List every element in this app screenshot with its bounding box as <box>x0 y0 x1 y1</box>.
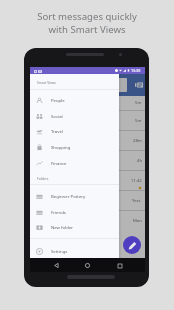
button[interactable]: Shopping <box>30 139 119 155</box>
button[interactable]: Compose message <box>123 236 141 254</box>
staticText: 5m <box>135 118 142 124</box>
staticText: 28m <box>133 138 142 144</box>
staticText: Sort messages quickly <box>37 10 137 23</box>
staticText: Social <box>51 113 63 119</box>
button[interactable]: Beginner Pottery <box>30 188 119 204</box>
staticText: Finance <box>51 160 67 166</box>
staticText: Smart Views <box>37 80 56 84</box>
button[interactable]: People <box>30 92 119 108</box>
button[interactable]: Back <box>51 260 62 271</box>
staticText: Folders <box>37 176 49 180</box>
staticText: with Smart Views <box>48 23 126 36</box>
staticText: Friends <box>51 209 66 215</box>
staticText: Yest. <box>132 198 142 204</box>
button[interactable]: Travel <box>30 123 119 139</box>
staticText: Settings <box>51 248 68 254</box>
staticText: Kate Lee <box>49 194 67 200</box>
staticText: 13:30 <box>131 68 141 73</box>
staticText: 5m <box>135 100 142 106</box>
button[interactable]: Finance <box>30 155 119 171</box>
staticText: Shopping <box>51 144 71 150</box>
staticText: 11:42 <box>131 178 142 184</box>
staticText: Mon <box>133 218 142 224</box>
button[interactable]: Friends <box>30 204 119 220</box>
button[interactable]: Recent apps <box>114 260 125 271</box>
button[interactable]: Home <box>82 260 93 271</box>
staticText: People <box>51 97 65 103</box>
staticText: Travel <box>51 128 63 134</box>
button[interactable]: Settings <box>30 243 119 259</box>
button[interactable]: New folder <box>30 219 119 235</box>
staticText: New folder <box>51 224 74 230</box>
button[interactable]: Social <box>30 108 119 124</box>
staticText: Beginner Pottery <box>51 193 86 199</box>
staticText: Garmin Connect <box>49 114 83 120</box>
staticText: 4h <box>137 158 142 164</box>
